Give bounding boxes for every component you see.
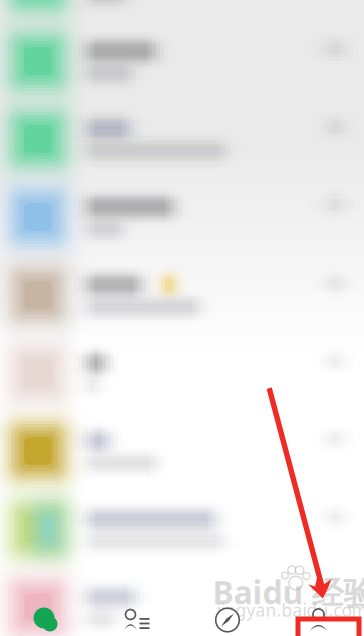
button[interactable]: Discover [182,603,273,636]
button[interactable]: Me [273,603,364,636]
staticText: jingyan.baidu.com [216,598,364,621]
staticText: Baidu 经验 [212,571,364,613]
button[interactable]: Chats [0,603,91,636]
button[interactable]: Contacts [91,603,182,636]
